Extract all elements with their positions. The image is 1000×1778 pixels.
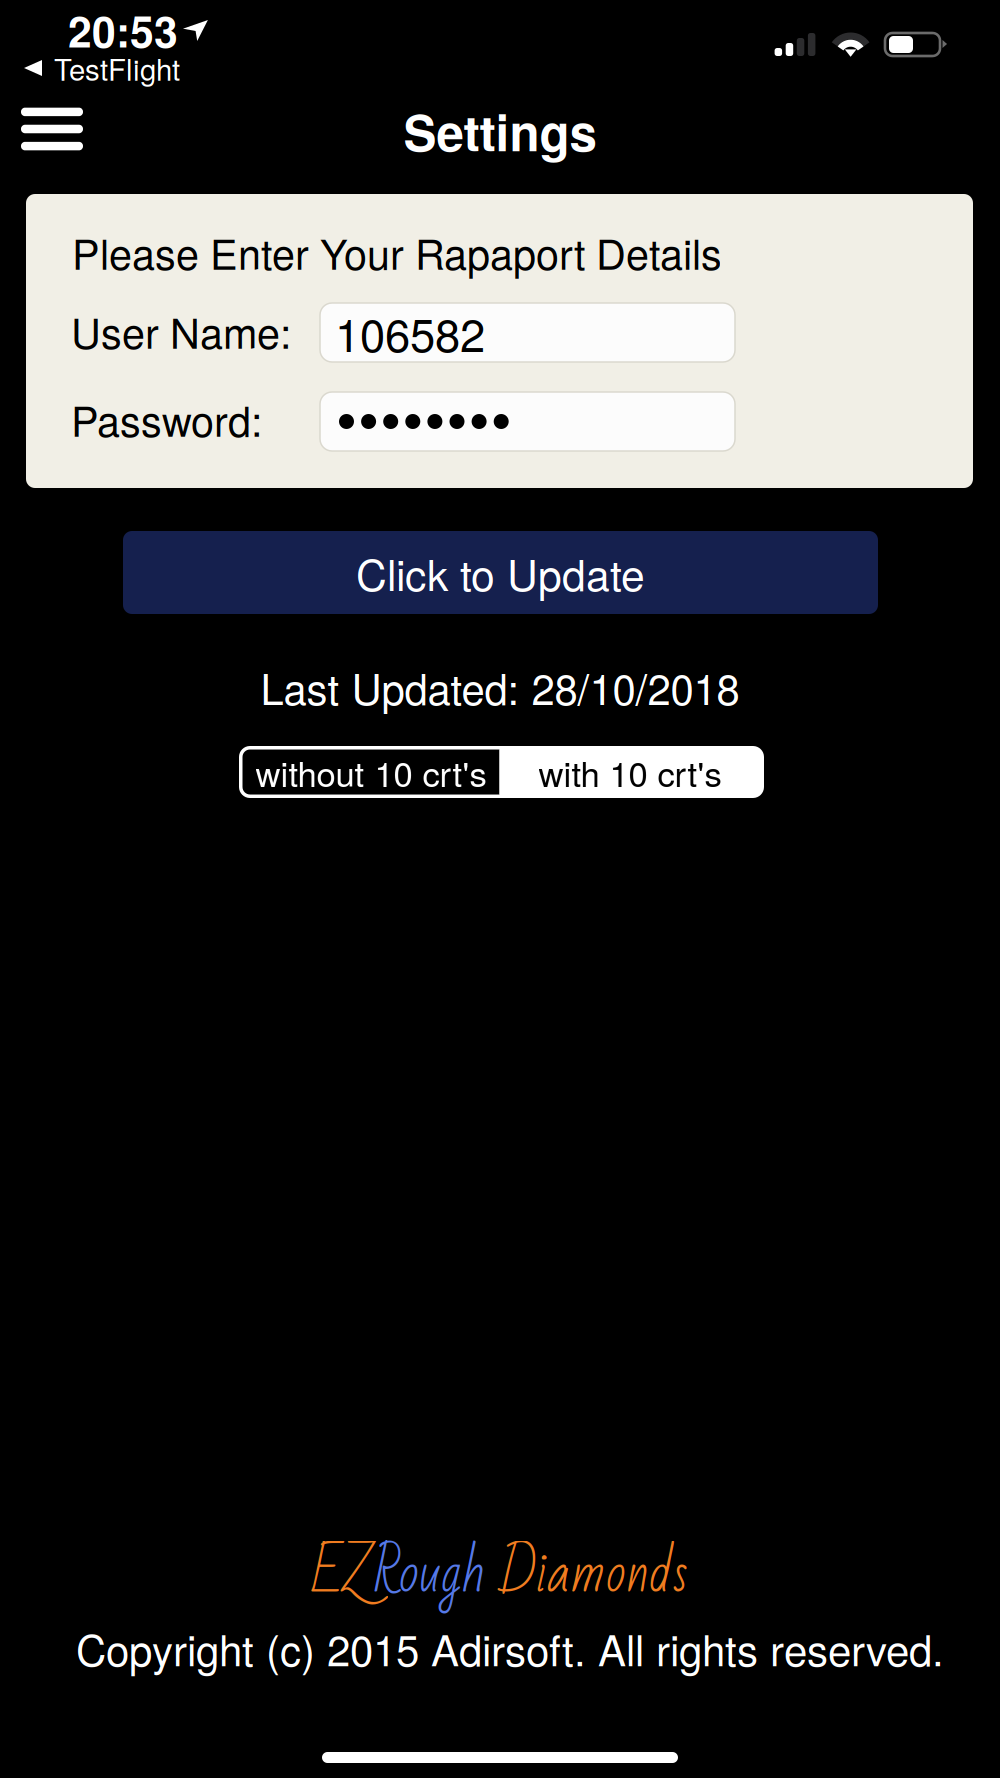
staticText: 106582 <box>335 300 485 365</box>
button[interactable]: Click to Update <box>123 531 878 614</box>
staticText: Rough <box>373 1523 499 1625</box>
staticText: Settings <box>403 96 596 166</box>
staticText: Diamonds <box>499 1523 688 1625</box>
button[interactable]: with 10 crt's <box>499 749 760 794</box>
staticText: EZ <box>312 1523 373 1625</box>
staticText: Click to Update <box>356 542 645 603</box>
staticText: with 10 crt's <box>538 747 721 797</box>
staticText: Copyright (c) 2015 Adirsoft. All rights … <box>76 1618 944 1678</box>
staticText: Password: <box>71 389 262 449</box>
staticText: User Name: <box>71 301 291 361</box>
staticText: without 10 crt's <box>255 747 486 797</box>
button[interactable]: User Name <box>320 303 735 362</box>
staticText: 20:53 <box>68 0 178 61</box>
staticText: TestFlight <box>54 47 180 89</box>
button[interactable]: Menu <box>10 97 94 161</box>
button[interactable]: Password <box>320 392 735 451</box>
button[interactable]: without 10 crt's <box>242 749 499 794</box>
staticText: Last Updated: 28/10/2018 <box>260 657 739 717</box>
button[interactable]: TestFlight <box>24 53 194 83</box>
staticText: Please Enter Your Rapaport Details <box>72 222 722 282</box>
